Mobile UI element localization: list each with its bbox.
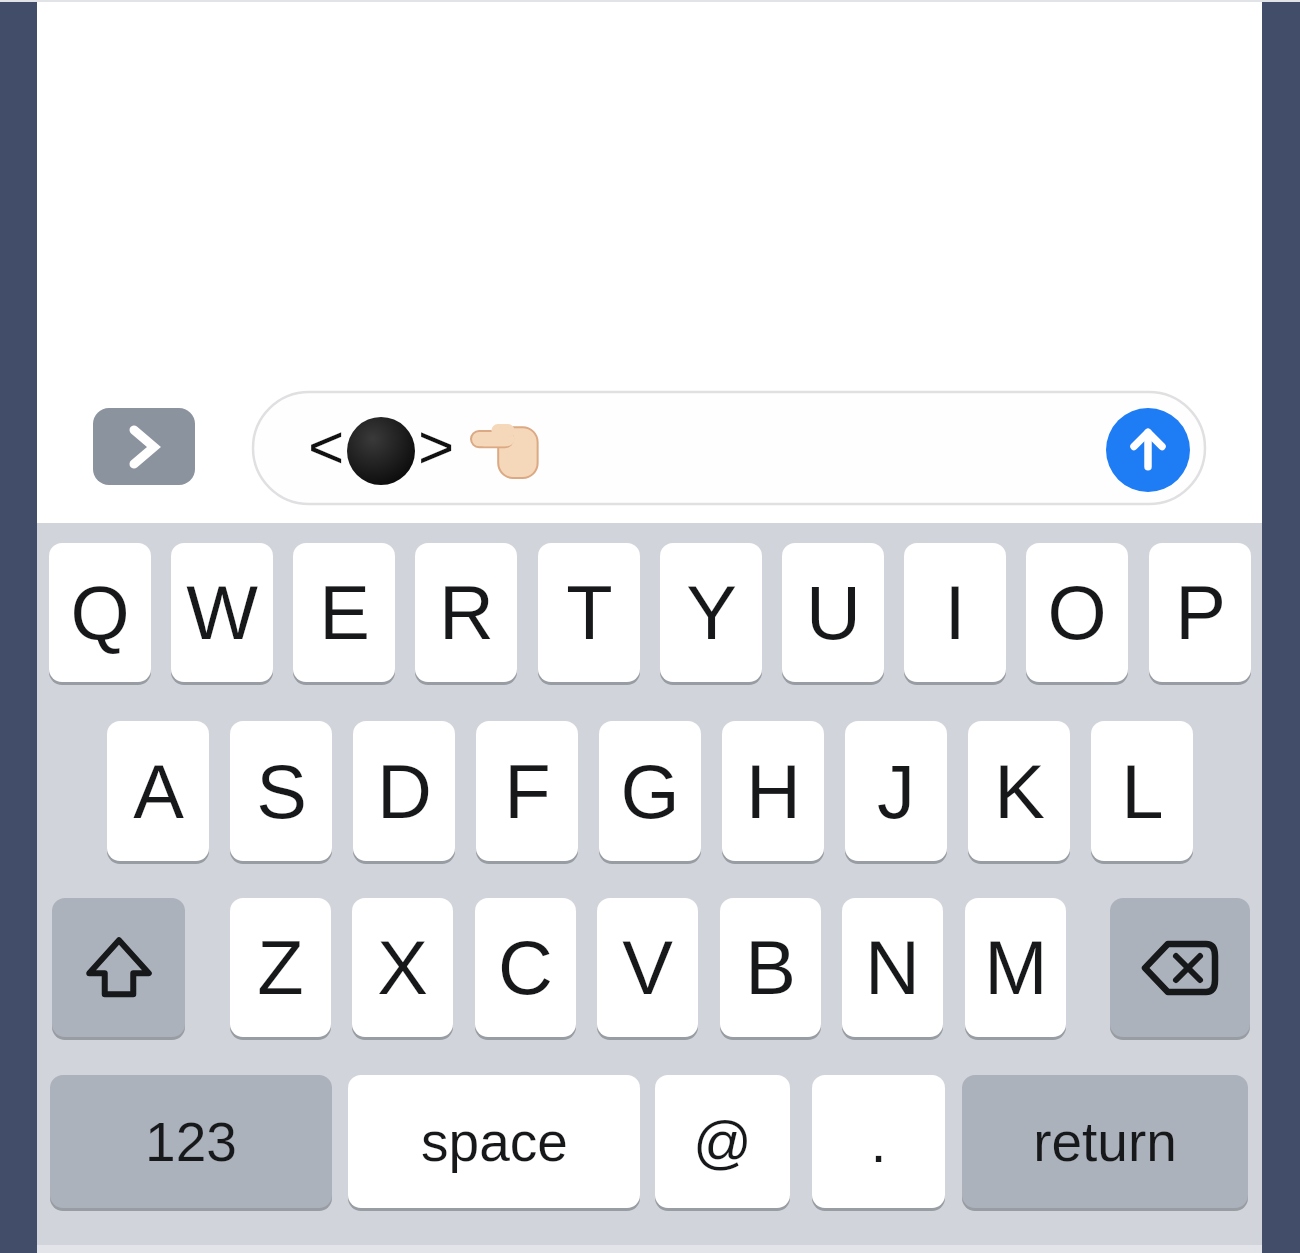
button[interactable]: return	[962, 1075, 1248, 1208]
staticText: C	[498, 925, 553, 1010]
button[interactable]: P	[1149, 543, 1251, 682]
button[interactable]: F	[476, 721, 578, 861]
staticText: V	[622, 925, 673, 1010]
button[interactable]: A	[107, 721, 209, 861]
button[interactable]: .	[812, 1075, 945, 1208]
button[interactable]	[253, 392, 1205, 504]
button[interactable]	[1106, 408, 1190, 492]
button[interactable]	[1110, 898, 1250, 1037]
button[interactable]: X	[352, 898, 453, 1037]
staticText: F	[504, 749, 551, 834]
button[interactable]: S	[230, 721, 332, 861]
button[interactable]	[93, 408, 195, 485]
button[interactable]: G	[599, 721, 701, 861]
button[interactable]: T	[538, 543, 640, 682]
button[interactable]: E	[293, 543, 395, 682]
staticText: D	[377, 749, 432, 834]
button[interactable]	[52, 898, 185, 1037]
staticText: B	[745, 925, 796, 1010]
staticText: H	[746, 749, 801, 834]
staticText: return	[1033, 1111, 1177, 1172]
staticText: M	[984, 925, 1048, 1010]
staticText: E	[319, 570, 370, 655]
button[interactable]: C	[475, 898, 576, 1037]
staticText: Q	[70, 570, 130, 655]
staticText: U	[806, 570, 861, 655]
staticText: R	[439, 570, 494, 655]
button[interactable]: Y	[660, 543, 762, 682]
button[interactable]: I	[904, 543, 1006, 682]
staticText: P	[1175, 570, 1226, 655]
button[interactable]: H	[722, 721, 824, 861]
button[interactable]: M	[965, 898, 1066, 1037]
staticText: K	[994, 749, 1045, 834]
button[interactable]: L	[1091, 721, 1193, 861]
staticText: <	[308, 412, 345, 481]
staticText: G	[620, 749, 680, 834]
staticText: space	[421, 1111, 568, 1172]
button[interactable]: O	[1026, 543, 1128, 682]
button[interactable]: V	[597, 898, 698, 1037]
staticText: Z	[257, 925, 304, 1010]
button[interactable]: N	[842, 898, 943, 1037]
staticText: W	[186, 570, 258, 655]
button[interactable]: J	[845, 721, 947, 861]
staticText: X	[377, 925, 428, 1010]
staticText: O	[1047, 570, 1107, 655]
button[interactable]: space	[348, 1075, 640, 1208]
staticText: @	[693, 1109, 752, 1174]
button[interactable]: @	[655, 1075, 790, 1208]
staticText: L	[1121, 749, 1164, 834]
button[interactable]: B	[720, 898, 821, 1037]
button[interactable]: K	[968, 721, 1070, 861]
staticText: J	[877, 749, 915, 834]
staticText: S	[256, 749, 307, 834]
staticText: T	[566, 570, 613, 655]
staticText: I	[944, 570, 966, 655]
staticText: >	[418, 412, 455, 481]
staticText: N	[865, 925, 920, 1010]
button[interactable]: Q	[49, 543, 151, 682]
button[interactable]: R	[415, 543, 517, 682]
button[interactable]: U	[782, 543, 884, 682]
staticText: 123	[145, 1111, 237, 1172]
button[interactable]: W	[171, 543, 273, 682]
staticText: Y	[686, 570, 737, 655]
button[interactable]: Z	[230, 898, 331, 1037]
staticText: .	[870, 1109, 887, 1174]
staticText: A	[133, 749, 184, 834]
button[interactable]: D	[353, 721, 455, 861]
button[interactable]: 123	[50, 1075, 332, 1208]
